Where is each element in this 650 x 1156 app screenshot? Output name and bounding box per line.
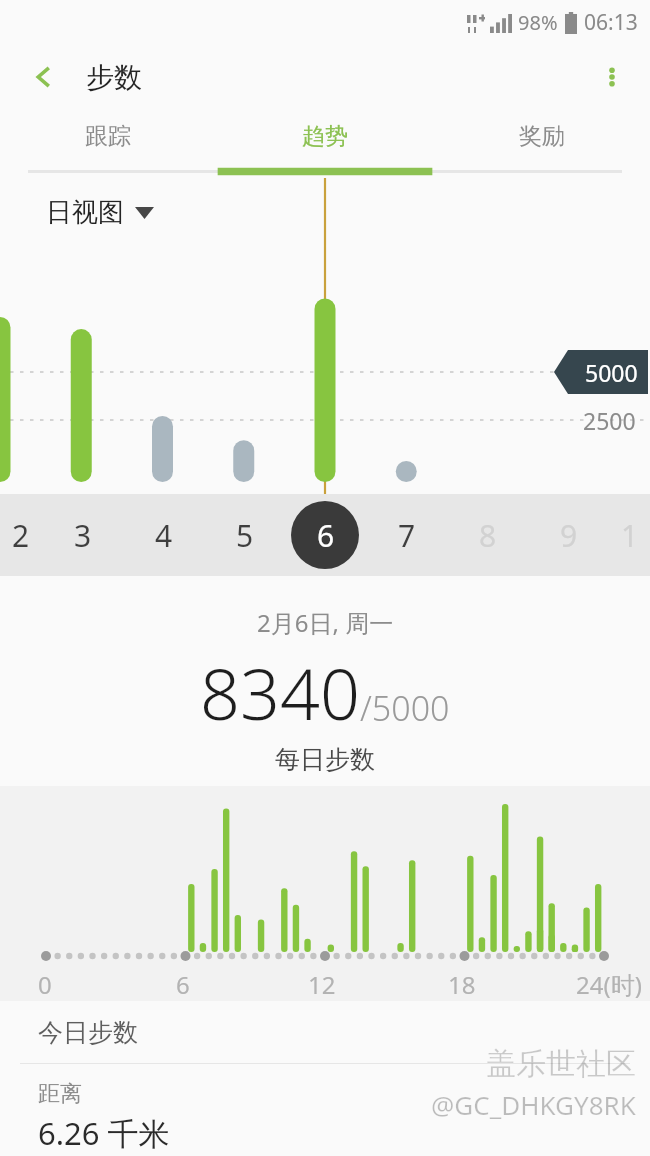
staticText: 2500 <box>583 405 636 436</box>
button[interactable]: 8 <box>447 494 528 576</box>
staticText: 2 <box>12 515 30 556</box>
button[interactable]: 距离 <box>0 1064 650 1154</box>
staticText: 6 <box>176 968 190 1001</box>
button[interactable]: 4 <box>123 494 204 576</box>
staticText: 2月6日, 周一 <box>257 606 394 639</box>
staticText: 距离 <box>38 1080 82 1108</box>
button[interactable]: 3 <box>42 494 123 576</box>
staticText: 每日步数 <box>275 744 375 775</box>
button[interactable]: 趋势 <box>216 110 433 178</box>
staticText: 6 <box>317 515 335 556</box>
staticText: 8 <box>479 515 497 556</box>
staticText: 98% <box>518 9 558 36</box>
staticText: 18 <box>448 968 476 1001</box>
staticText: 步数 <box>86 60 142 95</box>
staticText: 1 <box>621 515 639 556</box>
staticText: /5000 <box>360 685 450 731</box>
staticText: 8340 <box>200 645 360 740</box>
staticText: 7 <box>398 515 416 556</box>
button[interactable]: More options <box>584 49 640 105</box>
staticText: 5000 <box>585 357 638 388</box>
staticText: 9 <box>560 515 578 556</box>
staticText: 跟踪 <box>85 122 131 151</box>
staticText: 5 <box>236 515 254 556</box>
button[interactable]: 5 <box>204 494 285 576</box>
staticText: 日视图 <box>46 196 124 229</box>
button[interactable]: Back <box>16 49 72 105</box>
button[interactable]: 奖励 <box>433 110 650 178</box>
staticText: 今日步数 <box>38 1017 138 1048</box>
staticText: 奖励 <box>519 122 565 151</box>
staticText: 3 <box>74 515 92 556</box>
staticText: 0 <box>38 968 52 1001</box>
button[interactable]: 今日步数 <box>0 1001 650 1063</box>
staticText: 12 <box>308 968 336 1001</box>
button[interactable]: 2 <box>0 494 42 576</box>
staticText: 06:13 <box>584 8 638 37</box>
button[interactable]: 跟踪 <box>0 110 216 178</box>
button[interactable]: 日视图 <box>46 196 154 229</box>
button[interactable]: 7 <box>366 494 447 576</box>
staticText: @GC_DHKGY8RK <box>431 1087 636 1122</box>
staticText: 4 <box>155 515 173 556</box>
staticText: 6.26 千米 <box>38 1112 170 1154</box>
staticText: 24(时) <box>576 968 642 1001</box>
staticText: 盖乐世社区 <box>486 1045 636 1083</box>
staticText: 趋势 <box>302 122 348 151</box>
button[interactable]: 6 <box>285 494 366 576</box>
